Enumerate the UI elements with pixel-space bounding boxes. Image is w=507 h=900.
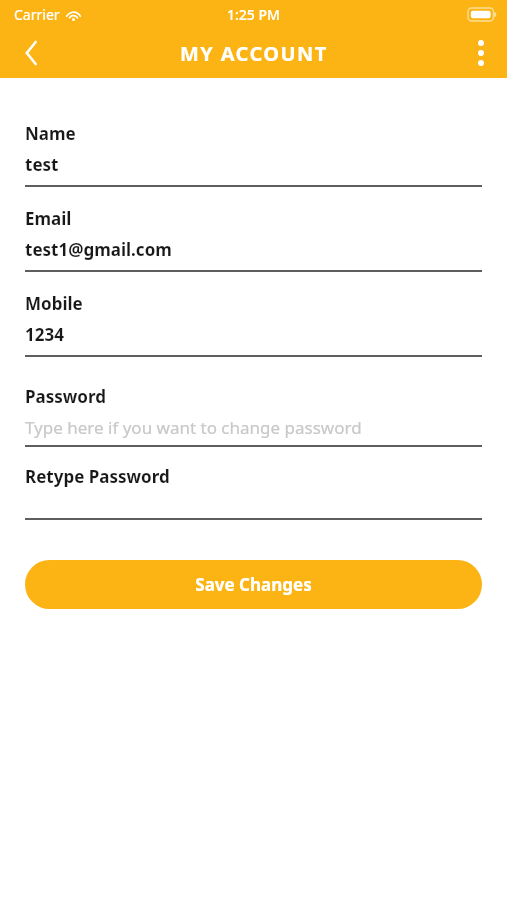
staticText: Retype Password — [25, 465, 170, 488]
button[interactable]: Save Changes — [25, 560, 482, 609]
staticText: 1234 — [25, 323, 64, 346]
staticText: Save Changes — [195, 573, 312, 596]
button[interactable]: Name — [25, 122, 482, 187]
staticText: test1@gmail.com — [25, 238, 172, 261]
staticText: 1:25 PM — [227, 5, 280, 24]
staticText: Email — [25, 207, 72, 230]
button[interactable]: Back — [0, 28, 62, 78]
staticText: Password — [25, 385, 106, 408]
button[interactable]: Email — [25, 207, 482, 272]
button[interactable]: Retype Password — [25, 465, 482, 520]
button[interactable]: Password — [25, 385, 482, 447]
button[interactable]: Mobile — [25, 292, 482, 357]
staticText: Type here if you want to change password — [25, 416, 362, 439]
staticText: MY ACCOUNT — [180, 40, 328, 67]
button[interactable]: More options — [455, 28, 507, 78]
staticText: Mobile — [25, 292, 83, 315]
staticText: Carrier — [14, 5, 60, 24]
staticText: test — [25, 153, 59, 176]
staticText: Name — [25, 122, 76, 145]
